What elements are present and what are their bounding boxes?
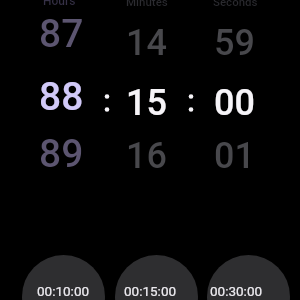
button[interactable]: 15 (86, 73, 206, 133)
staticText: 01 (214, 135, 255, 177)
staticText: 00:10:00 (37, 283, 90, 299)
staticText: 59 (214, 22, 255, 64)
staticText: 00 (214, 82, 255, 124)
staticText: 87 (39, 11, 84, 57)
button[interactable]: 00 (174, 73, 294, 133)
staticText: Minutes (126, 0, 168, 8)
button[interactable]: 88 (1, 67, 121, 127)
staticText: 00:30:00 (210, 283, 263, 299)
staticText: 00:15:00 (124, 283, 177, 299)
staticText: 14 (126, 22, 167, 64)
button[interactable] (207, 255, 290, 300)
staticText: 16 (126, 135, 167, 177)
staticText: Seconds (213, 0, 258, 8)
staticText: 89 (39, 131, 84, 177)
staticText: 88 (39, 74, 84, 120)
button[interactable] (115, 255, 198, 300)
button[interactable] (22, 255, 105, 300)
staticText: 15 (126, 82, 167, 124)
staticText: Hours (43, 0, 76, 8)
